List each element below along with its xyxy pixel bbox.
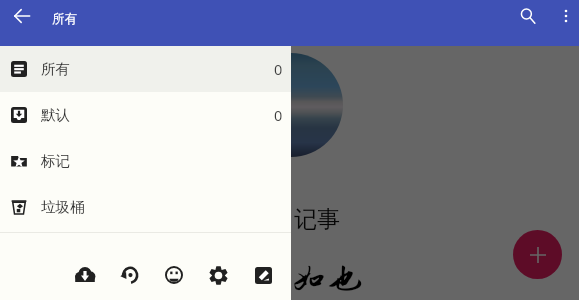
button[interactable]: History: [112, 258, 146, 292]
staticText: 标记: [41, 152, 70, 170]
button[interactable]: Settings: [201, 258, 235, 292]
button[interactable]: Back: [6, 0, 38, 32]
button[interactable]: 标记: [0, 138, 291, 184]
button[interactable]: Add note: [513, 230, 562, 279]
button[interactable]: More options: [550, 0, 579, 32]
staticText: 所有: [41, 60, 70, 78]
button[interactable]: 所有: [0, 46, 291, 92]
staticText: 0: [274, 105, 283, 125]
button[interactable]: 垃圾桶: [0, 184, 291, 230]
staticText: 如也: [291, 259, 363, 299]
button[interactable]: Backup: [68, 258, 102, 292]
button[interactable]: 默认: [0, 92, 291, 138]
button[interactable]: Edit: [246, 258, 280, 292]
staticText: 0: [274, 59, 283, 79]
staticText: 所有: [52, 11, 77, 27]
button[interactable]: Search: [512, 0, 544, 32]
staticText: 垃圾桶: [41, 198, 85, 216]
staticText: 记事: [294, 205, 340, 234]
button[interactable]: Mood: [157, 258, 191, 292]
staticText: 默认: [41, 106, 70, 124]
